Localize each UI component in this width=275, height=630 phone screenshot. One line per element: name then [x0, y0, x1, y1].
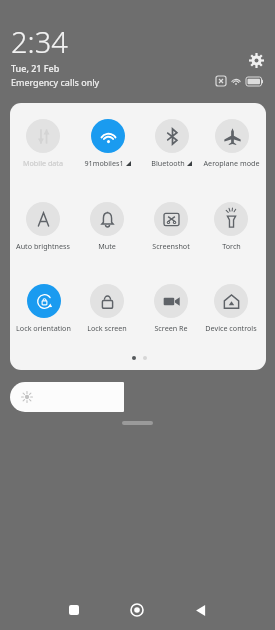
staticText: Device controls: [205, 323, 257, 333]
staticText: 2:34: [11, 22, 68, 61]
staticText: Tue, 21 Feb: [11, 62, 60, 74]
staticText: Auto brightness: [16, 241, 70, 251]
staticText: Screen Re: [154, 323, 188, 333]
staticText: Bluetooth: [151, 158, 185, 168]
staticText: 91mobiles1: [84, 158, 124, 168]
staticText: Lock screen: [87, 323, 127, 333]
button[interactable]: Back: [188, 598, 212, 622]
staticText: Mute: [98, 241, 116, 251]
staticText: Emergency calls only: [11, 76, 100, 88]
button[interactable]: Screenshot: [141, 202, 201, 260]
button[interactable]: Screen Re: [141, 284, 201, 342]
button[interactable]: Torch: [201, 202, 261, 260]
staticText: Torch: [222, 241, 241, 251]
button[interactable]: Lock orientation: [13, 284, 73, 342]
staticText: Mobile data: [23, 158, 63, 168]
button[interactable]: Recents: [62, 598, 86, 622]
staticText: Lock orientation: [16, 323, 71, 333]
button[interactable]: Bluetooth: [141, 119, 201, 177]
button[interactable]: Brightness: [10, 382, 124, 412]
staticText: Aeroplane mode: [203, 158, 260, 168]
button[interactable]: Mute: [77, 202, 137, 260]
button[interactable]: 91mobiles1: [77, 119, 137, 177]
button[interactable]: Lock screen: [77, 284, 137, 342]
button[interactable]: Auto brightness: [13, 202, 73, 260]
button[interactable]: Home: [125, 598, 149, 622]
button[interactable]: Mobile data: [13, 119, 73, 177]
button[interactable]: Aeroplane mode: [201, 119, 261, 177]
staticText: Screenshot: [152, 241, 190, 251]
button[interactable]: Device controls: [201, 284, 261, 342]
button[interactable]: Settings: [244, 48, 268, 72]
